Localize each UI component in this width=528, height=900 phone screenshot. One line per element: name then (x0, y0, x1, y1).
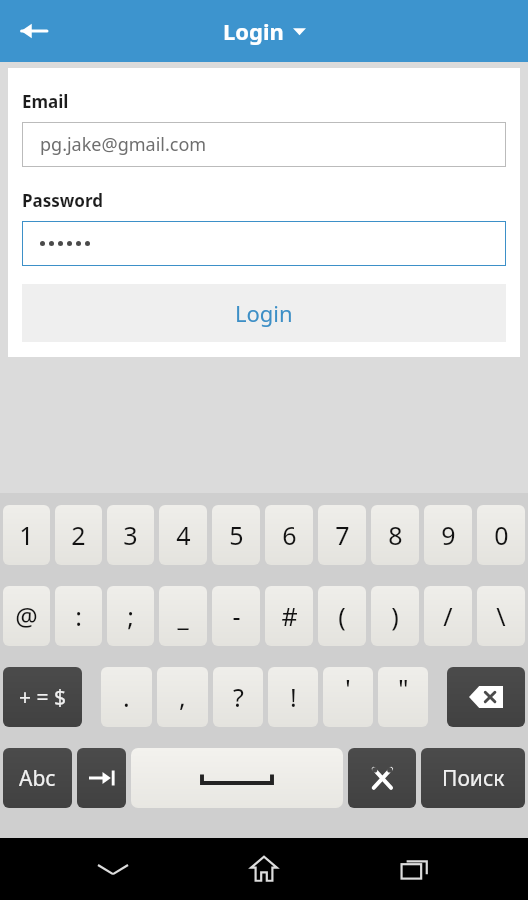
staticText: : (75, 599, 82, 633)
button[interactable]: Tab (77, 748, 126, 808)
button[interactable]: ) (371, 586, 419, 646)
staticText: @ (15, 599, 38, 633)
staticText: Login (235, 298, 293, 328)
staticText: 7 (335, 518, 350, 552)
button[interactable]: / (424, 586, 472, 646)
button[interactable]: Space (131, 748, 343, 808)
staticText: Login (223, 16, 284, 46)
staticText: 9 (441, 518, 456, 552)
button[interactable]: ( (318, 586, 366, 646)
button[interactable]: : (55, 586, 102, 646)
button[interactable]: 8 (371, 505, 419, 565)
staticText: / (443, 599, 453, 633)
staticText: + = $ (19, 683, 66, 712)
button[interactable]: - (212, 586, 260, 646)
staticText: 6 (282, 518, 297, 552)
button[interactable] (22, 221, 506, 266)
button[interactable]: _ (159, 586, 207, 646)
staticText: " (398, 670, 409, 705)
button[interactable]: pg.jake@gmail.com (22, 122, 506, 167)
button[interactable]: # (265, 586, 313, 646)
button[interactable]: Recent apps (377, 838, 453, 900)
button[interactable]: 4 (159, 505, 207, 565)
staticText: Email (22, 90, 69, 113)
staticText: 8 (388, 518, 403, 552)
staticText: , (179, 680, 186, 714)
staticText: 2 (71, 518, 86, 552)
staticText: 3 (123, 518, 138, 552)
button[interactable]: 7 (318, 505, 366, 565)
staticText: Password (22, 189, 103, 212)
button[interactable]: \ (477, 586, 525, 646)
staticText: 4 (176, 518, 191, 552)
button[interactable]: Login (22, 284, 506, 342)
button[interactable]: ; (107, 586, 154, 646)
button[interactable]: 5 (212, 505, 260, 565)
button[interactable]: 2 (55, 505, 102, 565)
button[interactable]: Backspace (447, 667, 525, 727)
staticText: ? (233, 680, 244, 714)
button[interactable]: @ (3, 586, 50, 646)
button[interactable]: " (378, 667, 428, 727)
staticText: Abc (19, 764, 56, 793)
staticText: pg.jake@gmail.com (40, 132, 207, 157)
button[interactable]: Settings (348, 748, 416, 808)
button[interactable]: Back (8, 5, 60, 57)
staticText: - (232, 599, 241, 633)
staticText: ( (338, 599, 346, 633)
button[interactable]: Home (226, 838, 302, 900)
staticText: Поиск (442, 764, 505, 793)
button[interactable]: ! (268, 667, 318, 727)
staticText: ' (345, 670, 351, 705)
staticText: ; (127, 599, 134, 633)
button[interactable]: 1 (3, 505, 50, 565)
staticText: 1 (19, 518, 34, 552)
staticText: ! (290, 680, 297, 714)
button[interactable]: Hide keyboard (75, 838, 151, 900)
button[interactable]: + = $ (3, 667, 82, 727)
staticText: 0 (494, 518, 509, 552)
button[interactable]: . (101, 667, 152, 727)
button[interactable]: , (157, 667, 208, 727)
staticText: \ (496, 599, 506, 633)
staticText: _ (177, 599, 189, 633)
button[interactable]: 9 (424, 505, 472, 565)
button[interactable]: Abc (3, 748, 72, 808)
staticText: . (123, 680, 130, 714)
staticText: # (281, 599, 298, 633)
button[interactable]: 3 (107, 505, 154, 565)
button[interactable]: Login (223, 16, 306, 46)
button[interactable]: ? (213, 667, 263, 727)
button[interactable]: ' (323, 667, 373, 727)
staticText: 5 (229, 518, 244, 552)
button[interactable]: Поиск (421, 748, 525, 808)
staticText: ) (391, 599, 399, 633)
button[interactable]: 0 (477, 505, 525, 565)
button[interactable]: 6 (265, 505, 313, 565)
